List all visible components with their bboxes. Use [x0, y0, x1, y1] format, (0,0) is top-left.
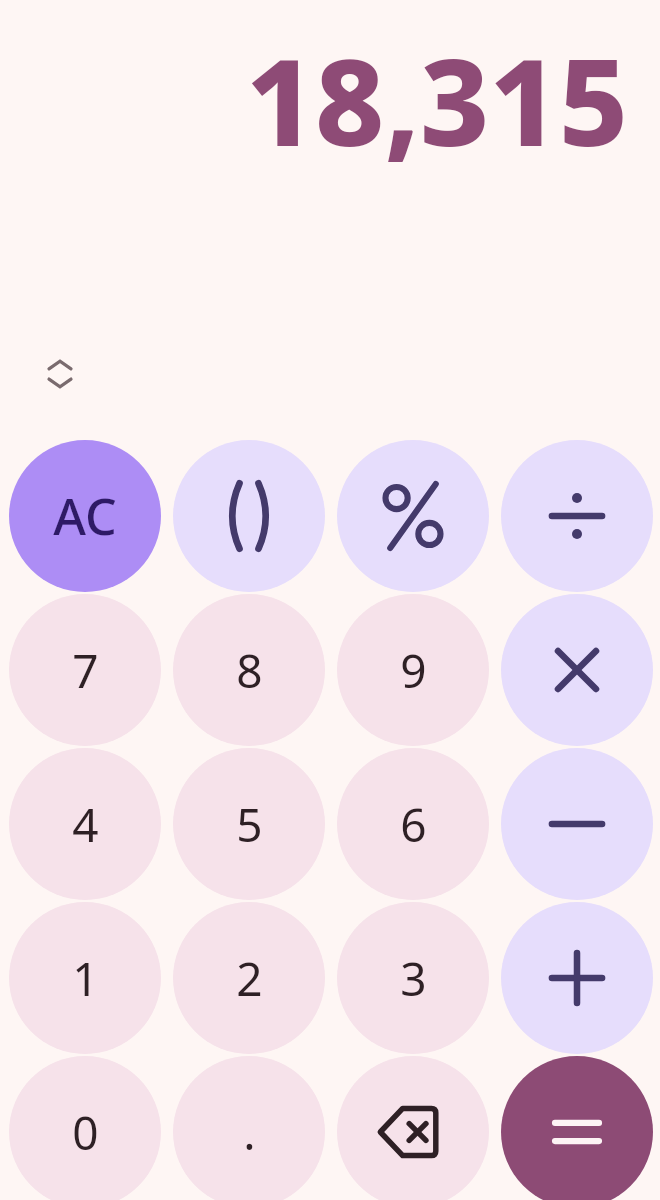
button[interactable]: 1 — [9, 902, 161, 1054]
staticText: . — [243, 1101, 256, 1164]
staticText: 18,315 — [0, 18, 628, 181]
staticText: 5 — [236, 793, 263, 856]
button[interactable]: 8 — [173, 594, 325, 746]
button[interactable]: 3 — [337, 902, 489, 1054]
button[interactable]: 7 — [9, 594, 161, 746]
button[interactable]: 9 — [337, 594, 489, 746]
button[interactable]: 0 — [9, 1056, 161, 1200]
staticText: 9 — [400, 639, 427, 702]
button[interactable]: Add — [501, 902, 653, 1054]
staticText: 3 — [400, 947, 427, 1010]
button[interactable]: Equals — [501, 1056, 653, 1200]
staticText: AC — [53, 482, 117, 550]
button[interactable]: 5 — [173, 748, 325, 900]
button[interactable]: Multiply — [501, 594, 653, 746]
staticText: 4 — [72, 793, 99, 856]
button[interactable]: Backspace — [337, 1056, 489, 1200]
button[interactable]: 6 — [337, 748, 489, 900]
button[interactable]: AC — [9, 440, 161, 592]
staticText: 2 — [236, 947, 263, 1010]
staticText: 8 — [236, 639, 263, 702]
staticText: 6 — [400, 793, 427, 856]
button[interactable]: Parentheses — [173, 440, 325, 592]
staticText: 1 — [72, 947, 99, 1010]
button[interactable]: Divide — [501, 440, 653, 592]
staticText: 7 — [72, 639, 99, 702]
button[interactable]: Subtract — [501, 748, 653, 900]
staticText: 0 — [72, 1101, 99, 1164]
button[interactable]: Percent — [337, 440, 489, 592]
button[interactable]: 2 — [173, 902, 325, 1054]
button[interactable]: . — [173, 1056, 325, 1200]
button[interactable]: 4 — [9, 748, 161, 900]
button[interactable]: Expand history — [38, 352, 82, 396]
